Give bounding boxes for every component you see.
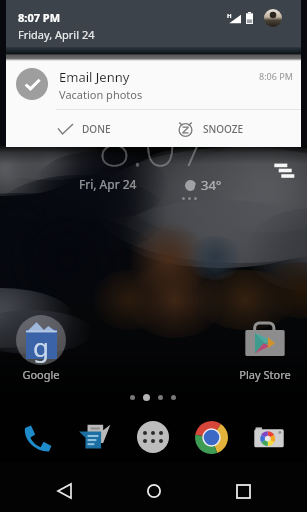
button[interactable]: 8:07	[0, 104, 307, 183]
staticText: 8:07	[98, 104, 210, 183]
staticText: Google	[22, 367, 60, 382]
staticText: 8:07 PM	[18, 10, 61, 25]
button[interactable]: Camera	[247, 415, 291, 459]
button[interactable]: Back	[42, 469, 86, 512]
staticText: SNOOZE	[203, 122, 244, 136]
staticText: H	[227, 12, 232, 20]
staticText: Vacation photos	[59, 87, 143, 102]
button[interactable]: Google Now	[268, 156, 300, 188]
button[interactable]: Home	[132, 469, 176, 512]
button[interactable]: SNOOZE	[153, 110, 301, 147]
button[interactable]: g	[10, 315, 72, 382]
button[interactable]: Phone	[15, 415, 59, 459]
staticText: Play Store	[239, 367, 291, 382]
button[interactable]: Chrome	[189, 415, 233, 459]
staticText: g	[33, 329, 49, 364]
button[interactable]: Email Jenny	[6, 61, 301, 109]
button[interactable]: DONE	[6, 110, 153, 147]
staticText: DONE	[82, 122, 111, 136]
staticText: 8:06 PM	[259, 70, 293, 82]
button[interactable]: All apps	[131, 415, 175, 459]
staticText: Fri, Apr 24	[79, 176, 137, 192]
staticText: Email Jenny	[59, 68, 130, 86]
button[interactable]: Play Store	[234, 315, 296, 382]
staticText: 34°	[201, 176, 222, 194]
staticText: Friday, April 24	[18, 27, 95, 42]
button[interactable]: Messenger	[73, 415, 117, 459]
button[interactable]: Recents	[221, 469, 265, 512]
